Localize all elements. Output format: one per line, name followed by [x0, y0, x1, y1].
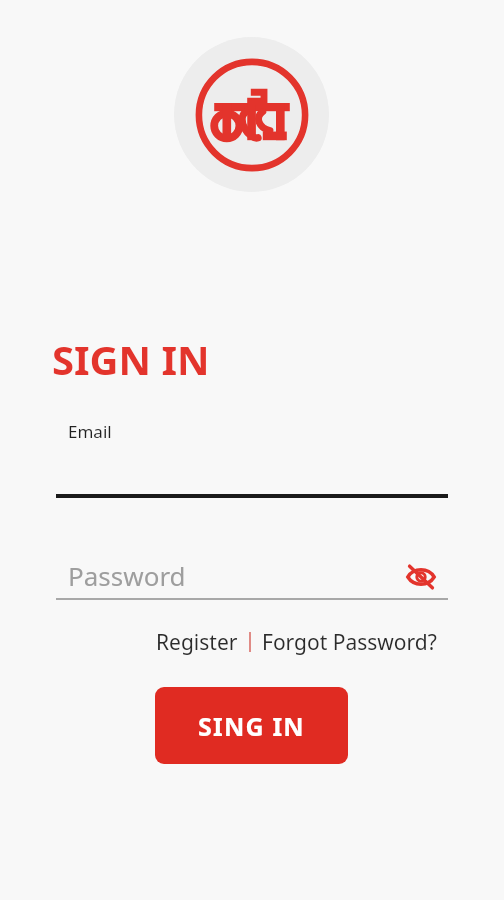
button[interactable]: Forgot Password?	[256, 626, 443, 658]
staticText: SING IN	[198, 709, 305, 743]
staticText: Password	[68, 558, 186, 593]
button[interactable]: Password	[56, 550, 448, 599]
staticText: Register	[156, 628, 238, 656]
button[interactable]: Register	[150, 626, 244, 658]
button[interactable]: Email	[56, 414, 448, 498]
staticText: SIGN IN	[52, 332, 210, 386]
staticText: Email	[68, 420, 112, 443]
staticText: Forgot Password?	[262, 628, 437, 656]
button[interactable]: Show password	[399, 555, 443, 599]
button[interactable]: SING IN	[155, 687, 348, 764]
